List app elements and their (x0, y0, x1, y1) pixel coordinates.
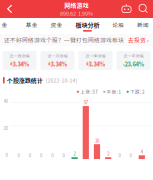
staticText: (2022-10-14) (46, 77, 78, 84)
staticText: -23.64% (122, 60, 144, 68)
staticText: 金 (1, 21, 7, 29)
staticText: 0 (130, 152, 132, 159)
button[interactable]: 还不好网络游戏个股？一键打包网络游戏板块 (0, 34, 153, 46)
button[interactable]: 论股 (110, 18, 126, 33)
staticText: 新闻 (137, 21, 149, 29)
staticText: 近一周涨幅 (9, 53, 29, 59)
button[interactable]: 基金 (24, 18, 40, 33)
button[interactable]: 近一月涨幅 (40, 51, 74, 70)
staticText: +3.34% (85, 60, 105, 68)
button[interactable]: Search (135, 0, 152, 17)
staticText: 个股涨跌统计 (7, 76, 43, 84)
button[interactable]: 近一年涨幅 (116, 51, 150, 70)
staticText: 上涨: 57 (80, 88, 98, 95)
button[interactable]: 近一季涨幅 (78, 51, 112, 70)
staticText: 板块分析 (75, 20, 99, 29)
staticText: 20 (3, 125, 7, 131)
staticText: 899.62 1.99% (60, 10, 93, 17)
staticText: 57 (84, 99, 88, 106)
button[interactable]: 近一周涨幅 (2, 51, 36, 70)
staticText: +3.34% (47, 60, 67, 68)
staticText: 0 (40, 152, 42, 159)
staticText: 2 (74, 150, 76, 157)
staticText: 0 (18, 152, 20, 159)
staticText: 下跌: 2 (130, 88, 145, 95)
staticText: 资金 (51, 21, 63, 29)
button[interactable]: 板块分析 (73, 18, 101, 33)
button[interactable]: 资金 (49, 18, 65, 33)
staticText: 还不好网络游戏个股？一键打包网络游戏板块 (4, 36, 124, 44)
staticText: 近一季涨幅 (85, 53, 105, 59)
button[interactable]: 新闻 (135, 18, 151, 33)
button[interactable]: 金 (0, 18, 11, 33)
staticText: 0 (51, 152, 53, 159)
staticText: 基金 (26, 21, 38, 29)
button[interactable]: Back (1, 0, 19, 17)
staticText: 网络游戏 (64, 1, 88, 10)
staticText: 论股 (112, 21, 124, 29)
staticText: 0 (62, 152, 64, 159)
staticText: 去投资 › (128, 36, 149, 44)
staticText: 4 (141, 149, 143, 155)
staticText: 40 (3, 98, 7, 104)
button[interactable]: AI assistant (118, 0, 135, 17)
staticText: 0 (29, 152, 31, 159)
staticText: +3.34% (9, 60, 29, 68)
staticText: 0 (5, 152, 7, 158)
staticText: 近一月涨幅 (47, 53, 67, 59)
staticText: 0 (118, 152, 120, 159)
staticText: 2 (107, 150, 109, 157)
staticText: 平盘: 1 (107, 88, 122, 95)
staticText: 16 (95, 137, 99, 144)
staticText: 近一年涨幅 (123, 53, 143, 59)
